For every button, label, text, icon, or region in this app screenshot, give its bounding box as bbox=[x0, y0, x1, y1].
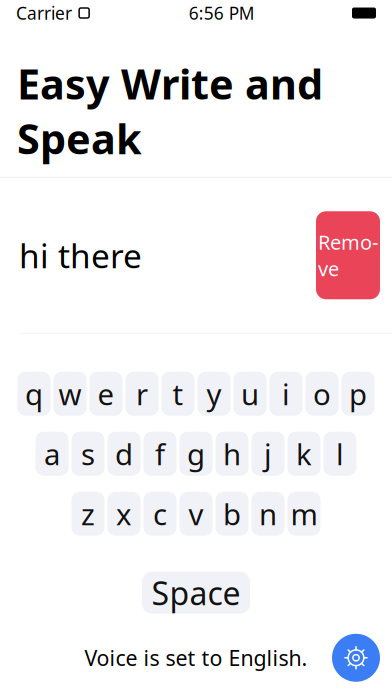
button[interactable]: s bbox=[71, 432, 104, 476]
staticText: g bbox=[187, 434, 205, 473]
staticText: a bbox=[44, 434, 60, 473]
button[interactable]: u bbox=[233, 372, 266, 416]
staticText: s bbox=[81, 434, 95, 473]
button[interactable]: Remove bbox=[316, 211, 380, 299]
staticText: d bbox=[115, 434, 133, 473]
staticText: Voice is set to English. bbox=[84, 644, 307, 672]
button[interactable]: h bbox=[215, 432, 248, 476]
staticText: y bbox=[206, 374, 221, 413]
button[interactable]: e bbox=[89, 372, 122, 416]
staticText: hi there bbox=[19, 233, 142, 277]
button[interactable]: p bbox=[341, 372, 374, 416]
staticText: k bbox=[296, 434, 312, 473]
button[interactable]: a bbox=[35, 432, 68, 476]
staticText: j bbox=[264, 434, 272, 473]
button[interactable]: z bbox=[71, 492, 104, 536]
staticText: Carrier bbox=[16, 1, 72, 24]
staticText: w bbox=[58, 374, 81, 413]
staticText: u bbox=[241, 374, 259, 413]
button[interactable]: x bbox=[107, 492, 140, 536]
staticText: f bbox=[155, 434, 165, 473]
staticText: r bbox=[136, 374, 148, 413]
button[interactable]: r bbox=[125, 372, 158, 416]
button[interactable]: n bbox=[251, 492, 284, 536]
staticText: b bbox=[223, 494, 241, 533]
button[interactable]: t bbox=[161, 372, 194, 416]
staticText: h bbox=[223, 434, 241, 473]
button[interactable]: d bbox=[107, 432, 140, 476]
button[interactable]: k bbox=[287, 432, 320, 476]
button[interactable]: Space bbox=[142, 572, 250, 614]
staticText: Easy Write and Speak bbox=[17, 56, 323, 166]
button[interactable]: o bbox=[305, 372, 338, 416]
staticText: 6:56 PM bbox=[189, 1, 255, 24]
button[interactable]: l bbox=[323, 432, 356, 476]
button[interactable]: q bbox=[17, 372, 50, 416]
button[interactable]: c bbox=[143, 492, 176, 536]
staticText: p bbox=[349, 374, 367, 413]
button[interactable]: b bbox=[215, 492, 248, 536]
button[interactable]: v bbox=[179, 492, 212, 536]
staticText: m bbox=[290, 494, 317, 533]
staticText bbox=[72, 1, 77, 24]
button[interactable]: w bbox=[53, 372, 86, 416]
staticText: n bbox=[259, 494, 277, 533]
button[interactable]: f bbox=[143, 432, 176, 476]
staticText: t bbox=[172, 374, 183, 413]
staticText: e bbox=[97, 374, 114, 413]
staticText: c bbox=[153, 494, 167, 533]
button[interactable]: i bbox=[269, 372, 302, 416]
button[interactable]: m bbox=[287, 492, 320, 536]
button[interactable]: Settings bbox=[332, 634, 380, 682]
button[interactable]: y bbox=[197, 372, 230, 416]
staticText: i bbox=[282, 374, 290, 413]
staticText: Remove bbox=[318, 229, 378, 282]
button[interactable]: g bbox=[179, 432, 212, 476]
staticText: z bbox=[81, 494, 95, 533]
staticText: x bbox=[116, 494, 132, 533]
staticText: Space bbox=[151, 571, 240, 614]
staticText: v bbox=[188, 494, 203, 533]
staticText: o bbox=[313, 374, 331, 413]
button[interactable]: j bbox=[251, 432, 284, 476]
staticText: q bbox=[25, 374, 43, 413]
staticText: l bbox=[336, 434, 344, 473]
